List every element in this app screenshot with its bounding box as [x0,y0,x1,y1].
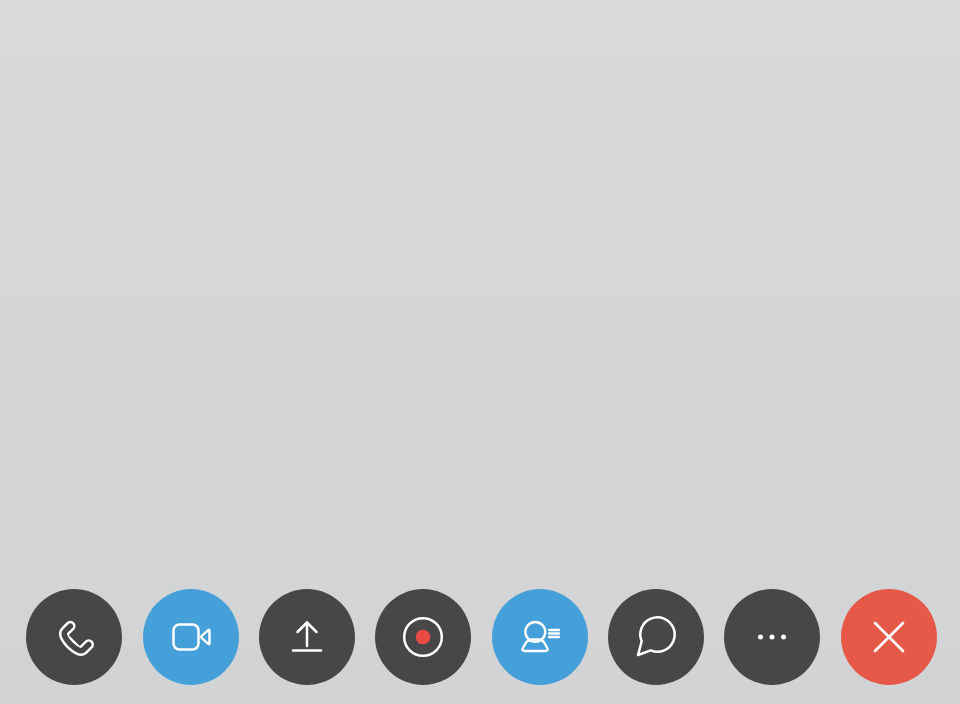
button[interactable] [608,589,704,685]
button[interactable] [492,589,588,685]
button[interactable] [724,589,820,685]
button[interactable] [143,589,239,685]
button[interactable] [841,589,937,685]
button[interactable] [26,589,122,685]
button[interactable] [375,589,471,685]
button[interactable] [259,589,355,685]
